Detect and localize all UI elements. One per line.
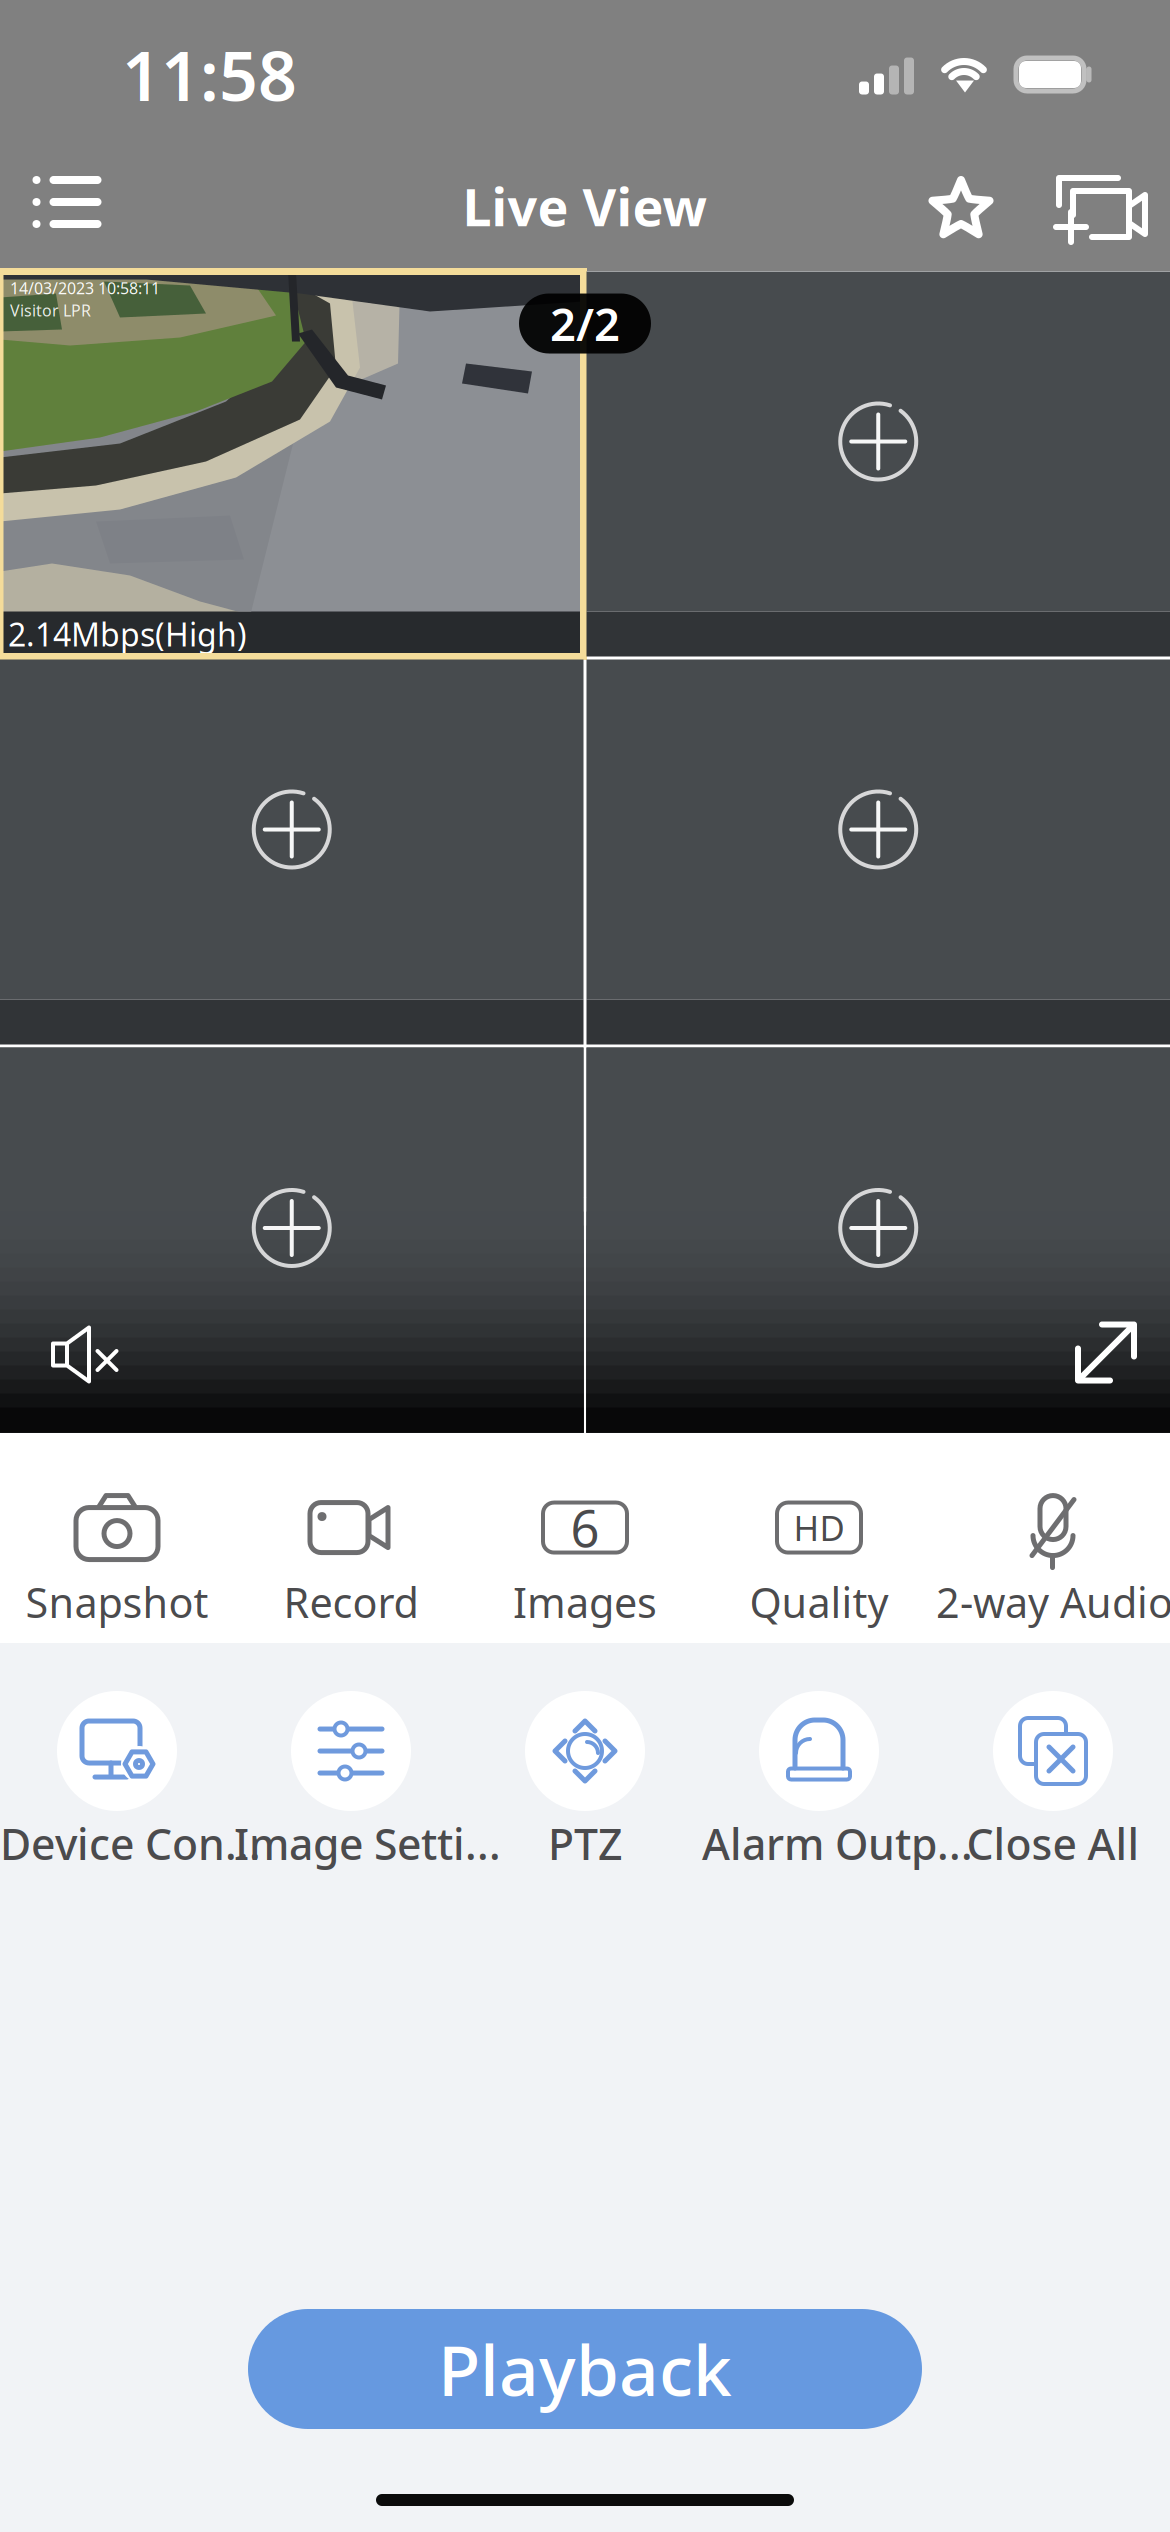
button[interactable]: Device list bbox=[12, 157, 122, 263]
button[interactable]: Close All bbox=[936, 1691, 1170, 1811]
staticText: 2-way Audio bbox=[936, 1575, 1170, 1629]
button[interactable]: Image Settings bbox=[234, 1691, 468, 1811]
staticText: Visitor LPR bbox=[10, 300, 91, 321]
button[interactable]: Add camera window bbox=[0, 659, 583, 1044]
button[interactable]: Add camera window bbox=[586, 659, 1170, 1044]
staticText: 6 bbox=[570, 1494, 599, 1561]
staticText: 14/03/2023 10:58:11 bbox=[10, 277, 160, 299]
button[interactable]: Images bbox=[468, 1497, 702, 1559]
staticText: Live View bbox=[462, 171, 707, 241]
staticText: Record bbox=[283, 1575, 418, 1629]
button[interactable]: Camera 1 live view bbox=[0, 271, 583, 656]
button[interactable]: Mute bbox=[28, 1324, 114, 1384]
button[interactable]: Full screen bbox=[1074, 1320, 1138, 1384]
button[interactable]: Add camera bbox=[1048, 157, 1156, 263]
button[interactable]: PTZ bbox=[468, 1691, 702, 1811]
button[interactable]: Record bbox=[234, 1497, 468, 1559]
staticText: Snapshot bbox=[25, 1575, 208, 1629]
button[interactable]: Add camera window bbox=[586, 271, 1170, 656]
staticText: 11:58 bbox=[122, 29, 297, 120]
staticText: Quality bbox=[749, 1575, 888, 1629]
button[interactable]: Quality bbox=[702, 1497, 936, 1559]
staticText: Images bbox=[513, 1575, 657, 1629]
staticText: Close All bbox=[966, 1815, 1139, 1872]
staticText: PTZ bbox=[548, 1815, 622, 1872]
button[interactable]: Alarm Output bbox=[702, 1691, 936, 1811]
staticText: Playback bbox=[438, 2323, 732, 2415]
button[interactable]: Favorites bbox=[902, 157, 1020, 263]
staticText: Image Setti... bbox=[234, 1815, 501, 1872]
button[interactable]: Playback bbox=[248, 2309, 922, 2429]
staticText: Device Con... bbox=[0, 1815, 261, 1872]
button[interactable]: 2-way Audio bbox=[936, 1497, 1170, 1559]
staticText: 2.14Mbps(High) bbox=[8, 613, 247, 655]
staticText: Alarm Outp... bbox=[702, 1815, 973, 1872]
staticText: HD bbox=[793, 1504, 844, 1550]
staticText: 2/2 bbox=[550, 293, 620, 354]
button[interactable]: Snapshot bbox=[0, 1497, 234, 1559]
button[interactable]: Device Configuration bbox=[0, 1691, 234, 1811]
